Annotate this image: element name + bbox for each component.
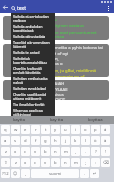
button[interactable]: Vaihda piirustadaja [13,34,55,40]
staticText: d [24,138,27,144]
button[interactable]: z [11,158,20,167]
staticText: Tig ilmajklipriterlät [13,102,45,106]
button[interactable]: kaytto [0,116,38,124]
button[interactable]: Vaihda ei-sertakudan [13,14,55,24]
staticText: Vaihdan eyraklajjad [13,86,46,90]
button[interactable]: f [31,136,40,145]
staticText: e [24,127,27,133]
staticText: Vaihda te antad [13,50,40,54]
button[interactable]: d [21,136,30,145]
button[interactable]: l [81,136,90,145]
button[interactable]: w [11,125,20,134]
button[interactable]: Vaihdan eyraklajjad [13,86,55,92]
staticText: x [14,149,17,155]
button[interactable]: n [51,147,60,156]
button[interactable]: Vaihdan ernikajuoka [13,76,55,86]
button[interactable]: v [31,147,40,156]
button[interactable]: ↵ [90,169,99,178]
button[interactable]: koyttaa [76,116,114,124]
button[interactable]: ö [91,136,100,145]
button[interactable]: Charliin lyaltuväli [13,66,55,76]
button[interactable]: : [91,158,100,167]
button[interactable]: s [11,136,20,145]
staticText: q [4,127,7,133]
button[interactable]: u [61,125,70,134]
staticText: h [54,138,57,144]
button[interactable]: Jos metka a pyhis kotona tai huvi of oyi… [3,44,109,77]
button[interactable]: ☺ [11,169,20,178]
button[interactable]: b [51,158,60,167]
button[interactable]: c [31,158,40,167]
staticText: ?12 [2,171,9,177]
staticText: ⌫ [103,160,109,165]
button[interactable]: . [80,169,89,178]
button[interactable]: More options [105,5,112,12]
button[interactable]: m [71,158,80,167]
staticText: b [44,149,47,155]
button[interactable]: , [21,169,30,178]
button[interactable]: Alku Yksityinen vastaus [3,16,109,40]
staticText: z [5,149,7,155]
button[interactable]: x [11,147,20,156]
button[interactable]: text [11,4,26,12]
button[interactable]: h [51,136,60,145]
button[interactable]: Vaihda te antad [13,50,55,56]
staticText: puen, ju gBui, mielifinnit aukonomaisuus… [48,68,109,77]
button[interactable]: ?12 [1,169,10,178]
button[interactable]: Charliin saatlikanäd [13,92,55,102]
button[interactable]: b [41,147,50,156]
button[interactable]: j [61,136,70,145]
button[interactable]: ! [101,147,110,156]
button[interactable]: DnAiiAH RIOYLAAE niesisus k-ldOiOT [3,80,109,100]
button[interactable]: x [21,158,30,167]
button[interactable]: , [71,147,80,156]
button[interactable]: t [41,125,50,134]
staticText: x [24,160,27,166]
button[interactable]: m [61,147,70,156]
button[interactable]: ⇧ [1,158,10,167]
staticText: lääreett [13,44,27,48]
staticText: Vaihdetuk [13,56,30,60]
staticText: s [14,138,17,144]
button[interactable]: Tig ilmajklipriterlät [13,102,55,108]
button[interactable]: Tapeläd pärummäsen [13,40,55,50]
button[interactable]: ? [91,147,100,156]
button[interactable]: y [51,125,60,134]
button[interactable]: ; [81,158,90,167]
button[interactable]: å [101,125,110,134]
staticText: g [44,138,47,144]
button[interactable]: i [71,125,80,134]
button[interactable]: suomi [31,169,79,178]
staticText: Charliin saatlikanäd [13,92,47,96]
button[interactable]: Back [2,4,9,11]
staticText: c [24,149,27,155]
staticText: . [84,171,86,177]
button[interactable]: g [41,136,50,145]
button[interactable]: q [1,125,10,134]
button[interactable]: c [21,147,30,156]
staticText: v [34,149,37,155]
button[interactable]: . [81,147,90,156]
staticText: ä [104,138,107,144]
button[interactable]: ä [101,136,110,145]
button[interactable]: Vaihdetuk [13,56,55,66]
button[interactable]: p [91,125,100,134]
button[interactable]: kay tta [38,116,76,124]
button[interactable]: z [1,147,10,156]
button[interactable]: r [31,125,40,134]
button[interactable]: n [61,158,70,167]
staticText: r [35,127,37,133]
button[interactable]: a [1,136,10,145]
button[interactable]: ⌫ [101,158,110,167]
staticText: . [85,149,87,155]
button[interactable]: v [41,158,50,167]
staticText: l [85,138,87,144]
staticText: text [17,5,26,12]
button[interactable]: o [81,125,90,134]
staticText: ! [105,149,107,155]
button[interactable]: k [71,136,80,145]
button[interactable]: Vaihda anitukdan [13,24,55,34]
button[interactable]: e [21,125,30,134]
staticText: kapoittajaak [13,28,34,32]
button[interactable]: Vihamaa applicaa [13,108,55,116]
